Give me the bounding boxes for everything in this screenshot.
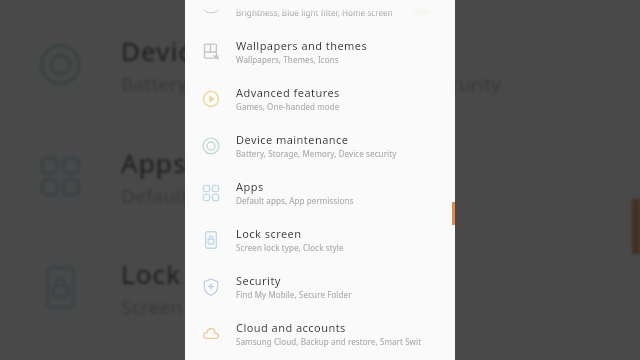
staticText: Battery, Storage, Memory, Device securit…: [236, 148, 397, 159]
staticText: Apps: [236, 179, 264, 194]
staticText: Find My Mobile, Secure Folder: [236, 289, 352, 300]
button[interactable]: Display: [185, 0, 455, 28]
staticText: Default apps, App permissions: [121, 183, 400, 209]
staticText: Samsung Cloud, Backup and restore, Smart…: [236, 336, 422, 347]
staticText: Device maintenance: [121, 33, 388, 69]
button[interactable]: Lock screen: [185, 216, 455, 263]
staticText: Advanced features: [236, 85, 340, 100]
button[interactable]: Apps: [0, 121, 640, 232]
button[interactable]: Device maintenance: [185, 122, 455, 169]
staticText: Wallpapers, Themes, Icons: [236, 54, 339, 65]
button[interactable]: Advanced features: [0, 0, 640, 9]
button[interactable]: Apps: [185, 169, 455, 216]
button[interactable]: Cloud and accounts: [185, 310, 455, 357]
staticText: Apps: [121, 145, 187, 181]
staticText: Lock screen: [236, 226, 302, 241]
staticText: Brightness, Blue light filter, Home scre…: [236, 7, 393, 18]
button[interactable]: Advanced features: [185, 75, 455, 122]
button[interactable]: Security: [185, 263, 455, 310]
staticText: Games, One-handed mode: [236, 101, 340, 112]
staticText: Wallpapers and themes: [236, 38, 368, 53]
staticText: Cloud and accounts: [236, 320, 346, 335]
button[interactable]: Wallpapers and themes: [185, 28, 455, 75]
staticText: Device maintenance: [236, 132, 349, 147]
staticText: Screen lock type, Clock style: [121, 294, 376, 320]
staticText: Lock screen: [121, 256, 277, 292]
button[interactable]: Security: [0, 343, 640, 360]
button[interactable]: Lock screen: [0, 232, 640, 343]
staticText: Screen lock type, Clock style: [236, 242, 344, 253]
staticText: Security: [236, 273, 281, 288]
staticText: Battery, Storage, Memory, Device securit…: [121, 71, 501, 97]
staticText: Default apps, App permissions: [236, 195, 354, 206]
button[interactable]: Device maintenance: [0, 9, 640, 120]
